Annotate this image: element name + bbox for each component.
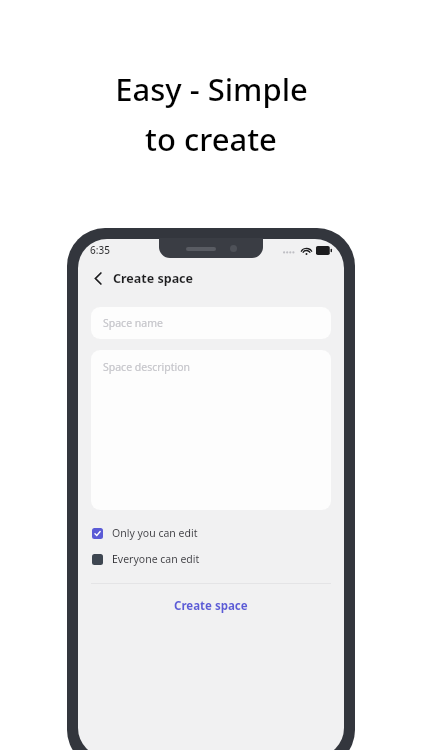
button[interactable]: Back xyxy=(89,269,107,287)
staticText: Space name xyxy=(103,316,163,330)
button[interactable]: Create space xyxy=(78,584,344,628)
button[interactable]: Everyone can edit xyxy=(78,549,344,569)
button[interactable]: Space description xyxy=(91,350,331,510)
staticText: 6:35 xyxy=(90,243,110,257)
staticText: Create space xyxy=(174,598,248,614)
button[interactable]: Only you can edit xyxy=(78,523,344,543)
staticText: Everyone can edit xyxy=(112,552,200,566)
staticText: Only you can edit xyxy=(112,526,198,540)
staticText: Space description xyxy=(103,360,191,374)
staticText: Create space xyxy=(113,270,194,287)
staticText: Easy - Simple xyxy=(115,68,308,110)
staticText: to create xyxy=(145,118,277,160)
button[interactable]: Space name xyxy=(91,307,331,339)
